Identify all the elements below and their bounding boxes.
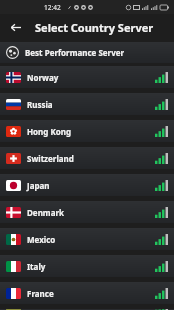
button[interactable]: Italy	[0, 255, 174, 277]
staticText: Italy	[27, 261, 46, 272]
button[interactable]: France	[0, 282, 174, 304]
staticText: Denmark	[27, 207, 64, 218]
staticText: Norway	[27, 72, 59, 83]
button[interactable]: Best Performance Server	[0, 42, 174, 63]
staticText: France	[27, 288, 54, 299]
button[interactable]: Ukraine	[0, 309, 174, 310]
button[interactable]: Mexico	[0, 228, 174, 250]
button[interactable]: Back	[6, 18, 24, 36]
staticText: Best Performance Server	[25, 47, 125, 58]
staticText: Mexico	[27, 234, 56, 245]
button[interactable]: Hong Kong	[0, 120, 174, 142]
button[interactable]: Japan	[0, 174, 174, 196]
button[interactable]: Norway	[0, 66, 174, 88]
staticText: Russia	[27, 99, 53, 110]
button[interactable]: Switzerland	[0, 147, 174, 169]
staticText: Select Country Server	[35, 20, 154, 35]
staticText: 12:42	[44, 3, 61, 12]
staticText: Hong Kong	[27, 126, 72, 137]
button[interactable]: Denmark	[0, 201, 174, 223]
staticText: Japan	[27, 180, 50, 191]
staticText: Switzerland	[27, 153, 74, 164]
button[interactable]: Russia	[0, 93, 174, 115]
